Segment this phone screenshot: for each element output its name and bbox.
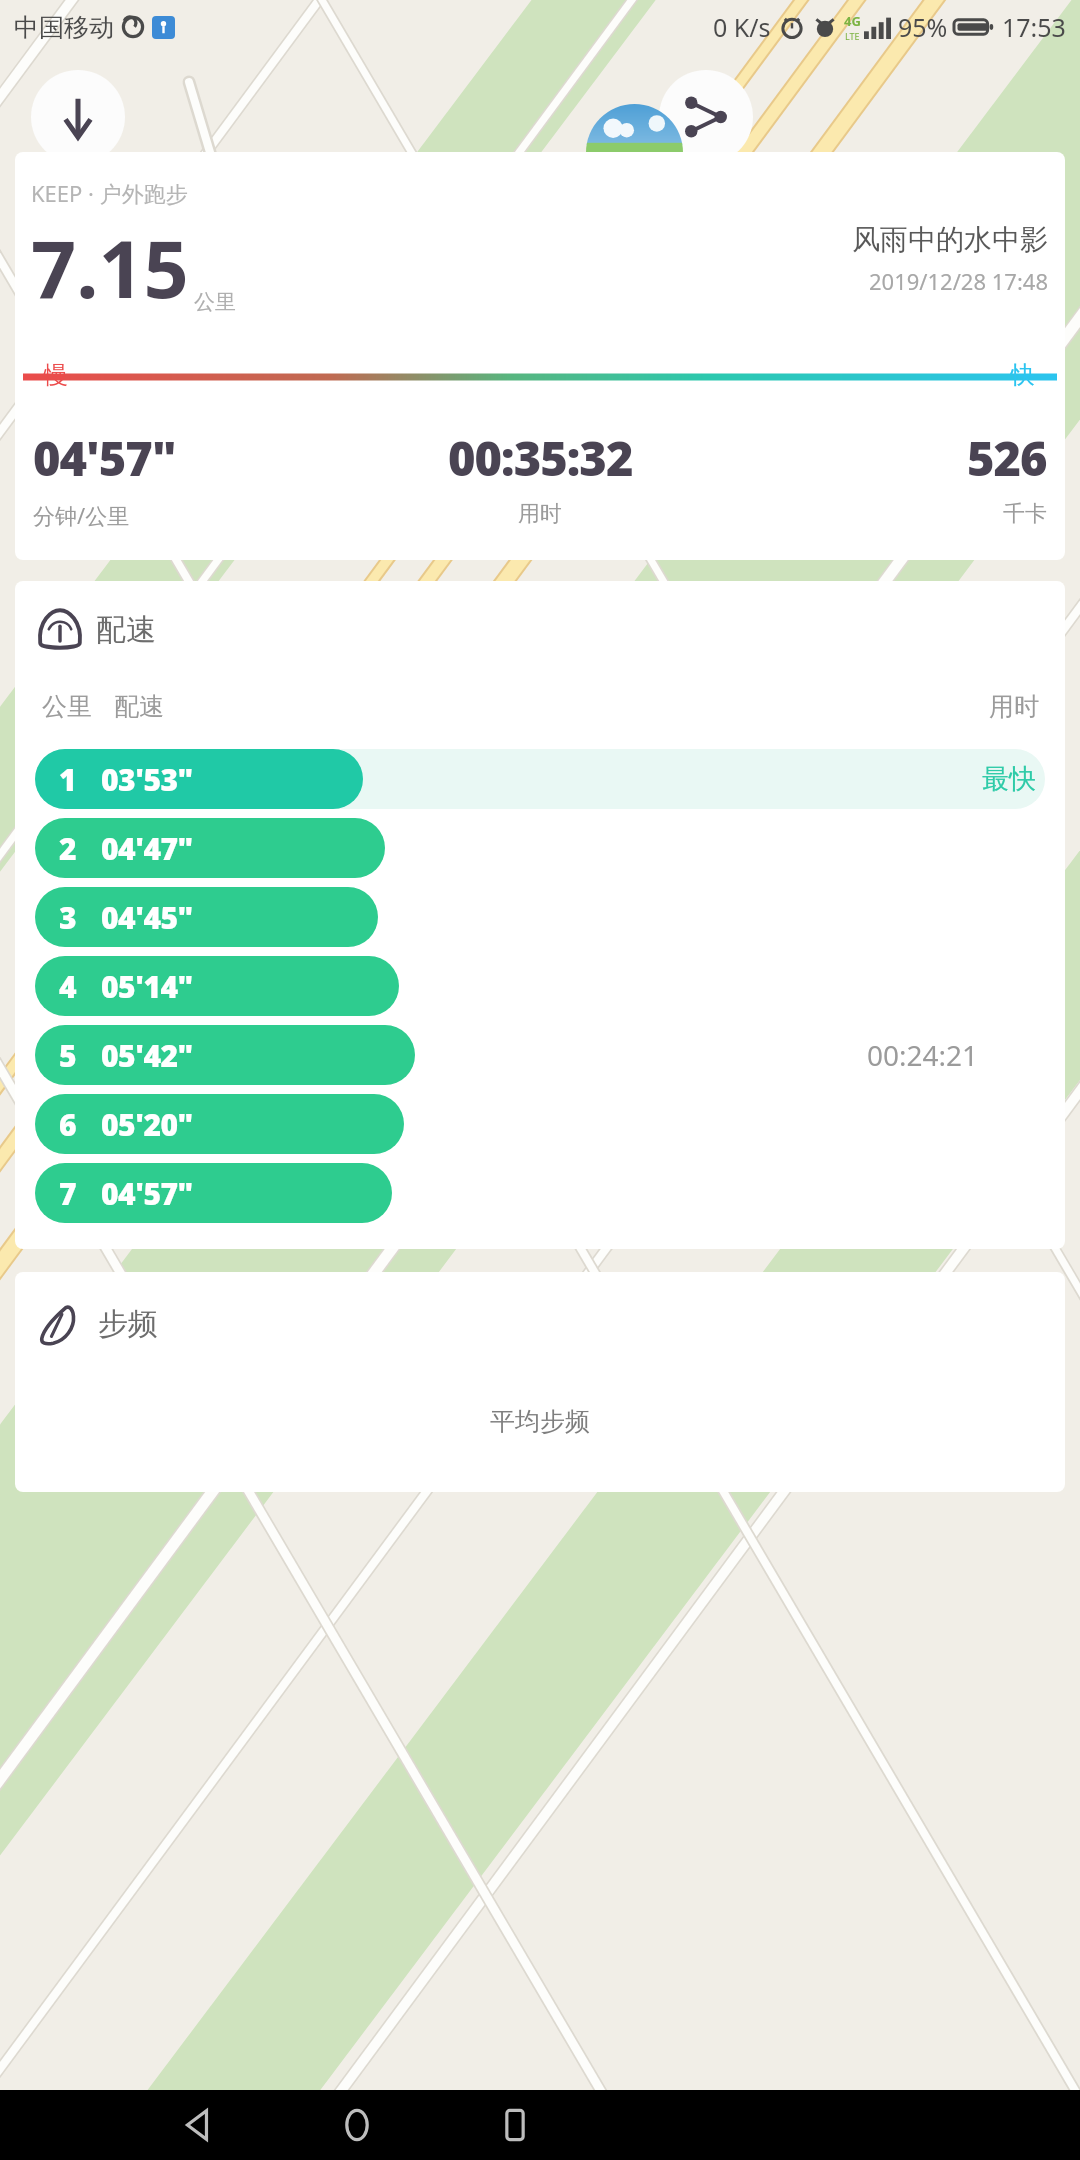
staticText: 分钟/公里 [33, 500, 130, 530]
button[interactable]: 5 [35, 1020, 1045, 1089]
staticText: 用时 [518, 500, 562, 528]
staticText: 公里 [42, 691, 92, 722]
button[interactable]: Back [160, 2090, 238, 2160]
staticText: 千卡 [1003, 500, 1047, 528]
staticText: 00:24:21 [867, 1036, 979, 1074]
staticText: 风雨中的水中影 [852, 222, 1048, 257]
staticText: 05'42" [101, 1035, 193, 1076]
staticText: 526 [967, 426, 1047, 490]
staticText: 用时 [989, 691, 1039, 722]
staticText: 00:35:32 [448, 426, 633, 490]
button[interactable]: 3 [35, 882, 1045, 951]
button[interactable]: Home [318, 2090, 396, 2160]
button[interactable]: 6 [35, 1089, 1045, 1158]
staticText: 最快 [982, 762, 1036, 796]
staticText: 5 [59, 1035, 77, 1076]
staticText: 步频 [98, 1305, 158, 1343]
staticText: 慢 [44, 360, 68, 390]
staticText: 7 [59, 1173, 77, 1214]
staticText: 1 [59, 759, 77, 800]
button[interactable]: Download [31, 70, 125, 164]
staticText: 快 [1011, 360, 1035, 390]
button[interactable]: 1 [35, 744, 1045, 813]
button[interactable]: Recent apps [476, 2090, 554, 2160]
staticText: 平均步频 [15, 1406, 1065, 1437]
staticText: 配速 [114, 691, 164, 722]
staticText: 2019/12/28 17:48 [869, 266, 1048, 296]
staticText: 配速 [96, 611, 156, 649]
button[interactable]: 步频 [15, 1272, 1065, 1492]
staticText: LTE [845, 30, 860, 42]
staticText: 6 [59, 1104, 77, 1145]
button[interactable]: Share [659, 70, 753, 164]
staticText: 04'45" [101, 897, 193, 938]
button[interactable]: User avatar [586, 104, 683, 201]
button[interactable]: 4 [35, 951, 1045, 1020]
staticText: 2 [59, 828, 77, 869]
staticText: 05'14" [101, 966, 193, 1007]
button[interactable]: KEEP · 户外跑步 [15, 152, 1065, 560]
staticText: 04'57" [101, 1173, 193, 1214]
staticText: 17:53 [1002, 10, 1066, 44]
staticText: 04'47" [101, 828, 193, 869]
staticText: 0 K/s [713, 10, 771, 44]
staticText: 03'53" [101, 759, 193, 800]
staticText: 04'57" [33, 426, 176, 490]
staticText: 中国移动 [14, 12, 114, 43]
staticText: 05'20" [101, 1104, 193, 1145]
staticText: 4G [844, 12, 861, 30]
staticText: 95% [898, 10, 948, 44]
staticText: 公里 [194, 289, 236, 315]
staticText: KEEP · 户外跑步 [31, 178, 188, 208]
staticText: 3 [59, 897, 77, 938]
button[interactable]: 配速 [15, 581, 1065, 1249]
staticText: 7.15 [31, 214, 189, 322]
staticText: 4 [59, 966, 77, 1007]
button[interactable]: 7 [35, 1158, 1045, 1227]
button[interactable]: 2 [35, 813, 1045, 882]
